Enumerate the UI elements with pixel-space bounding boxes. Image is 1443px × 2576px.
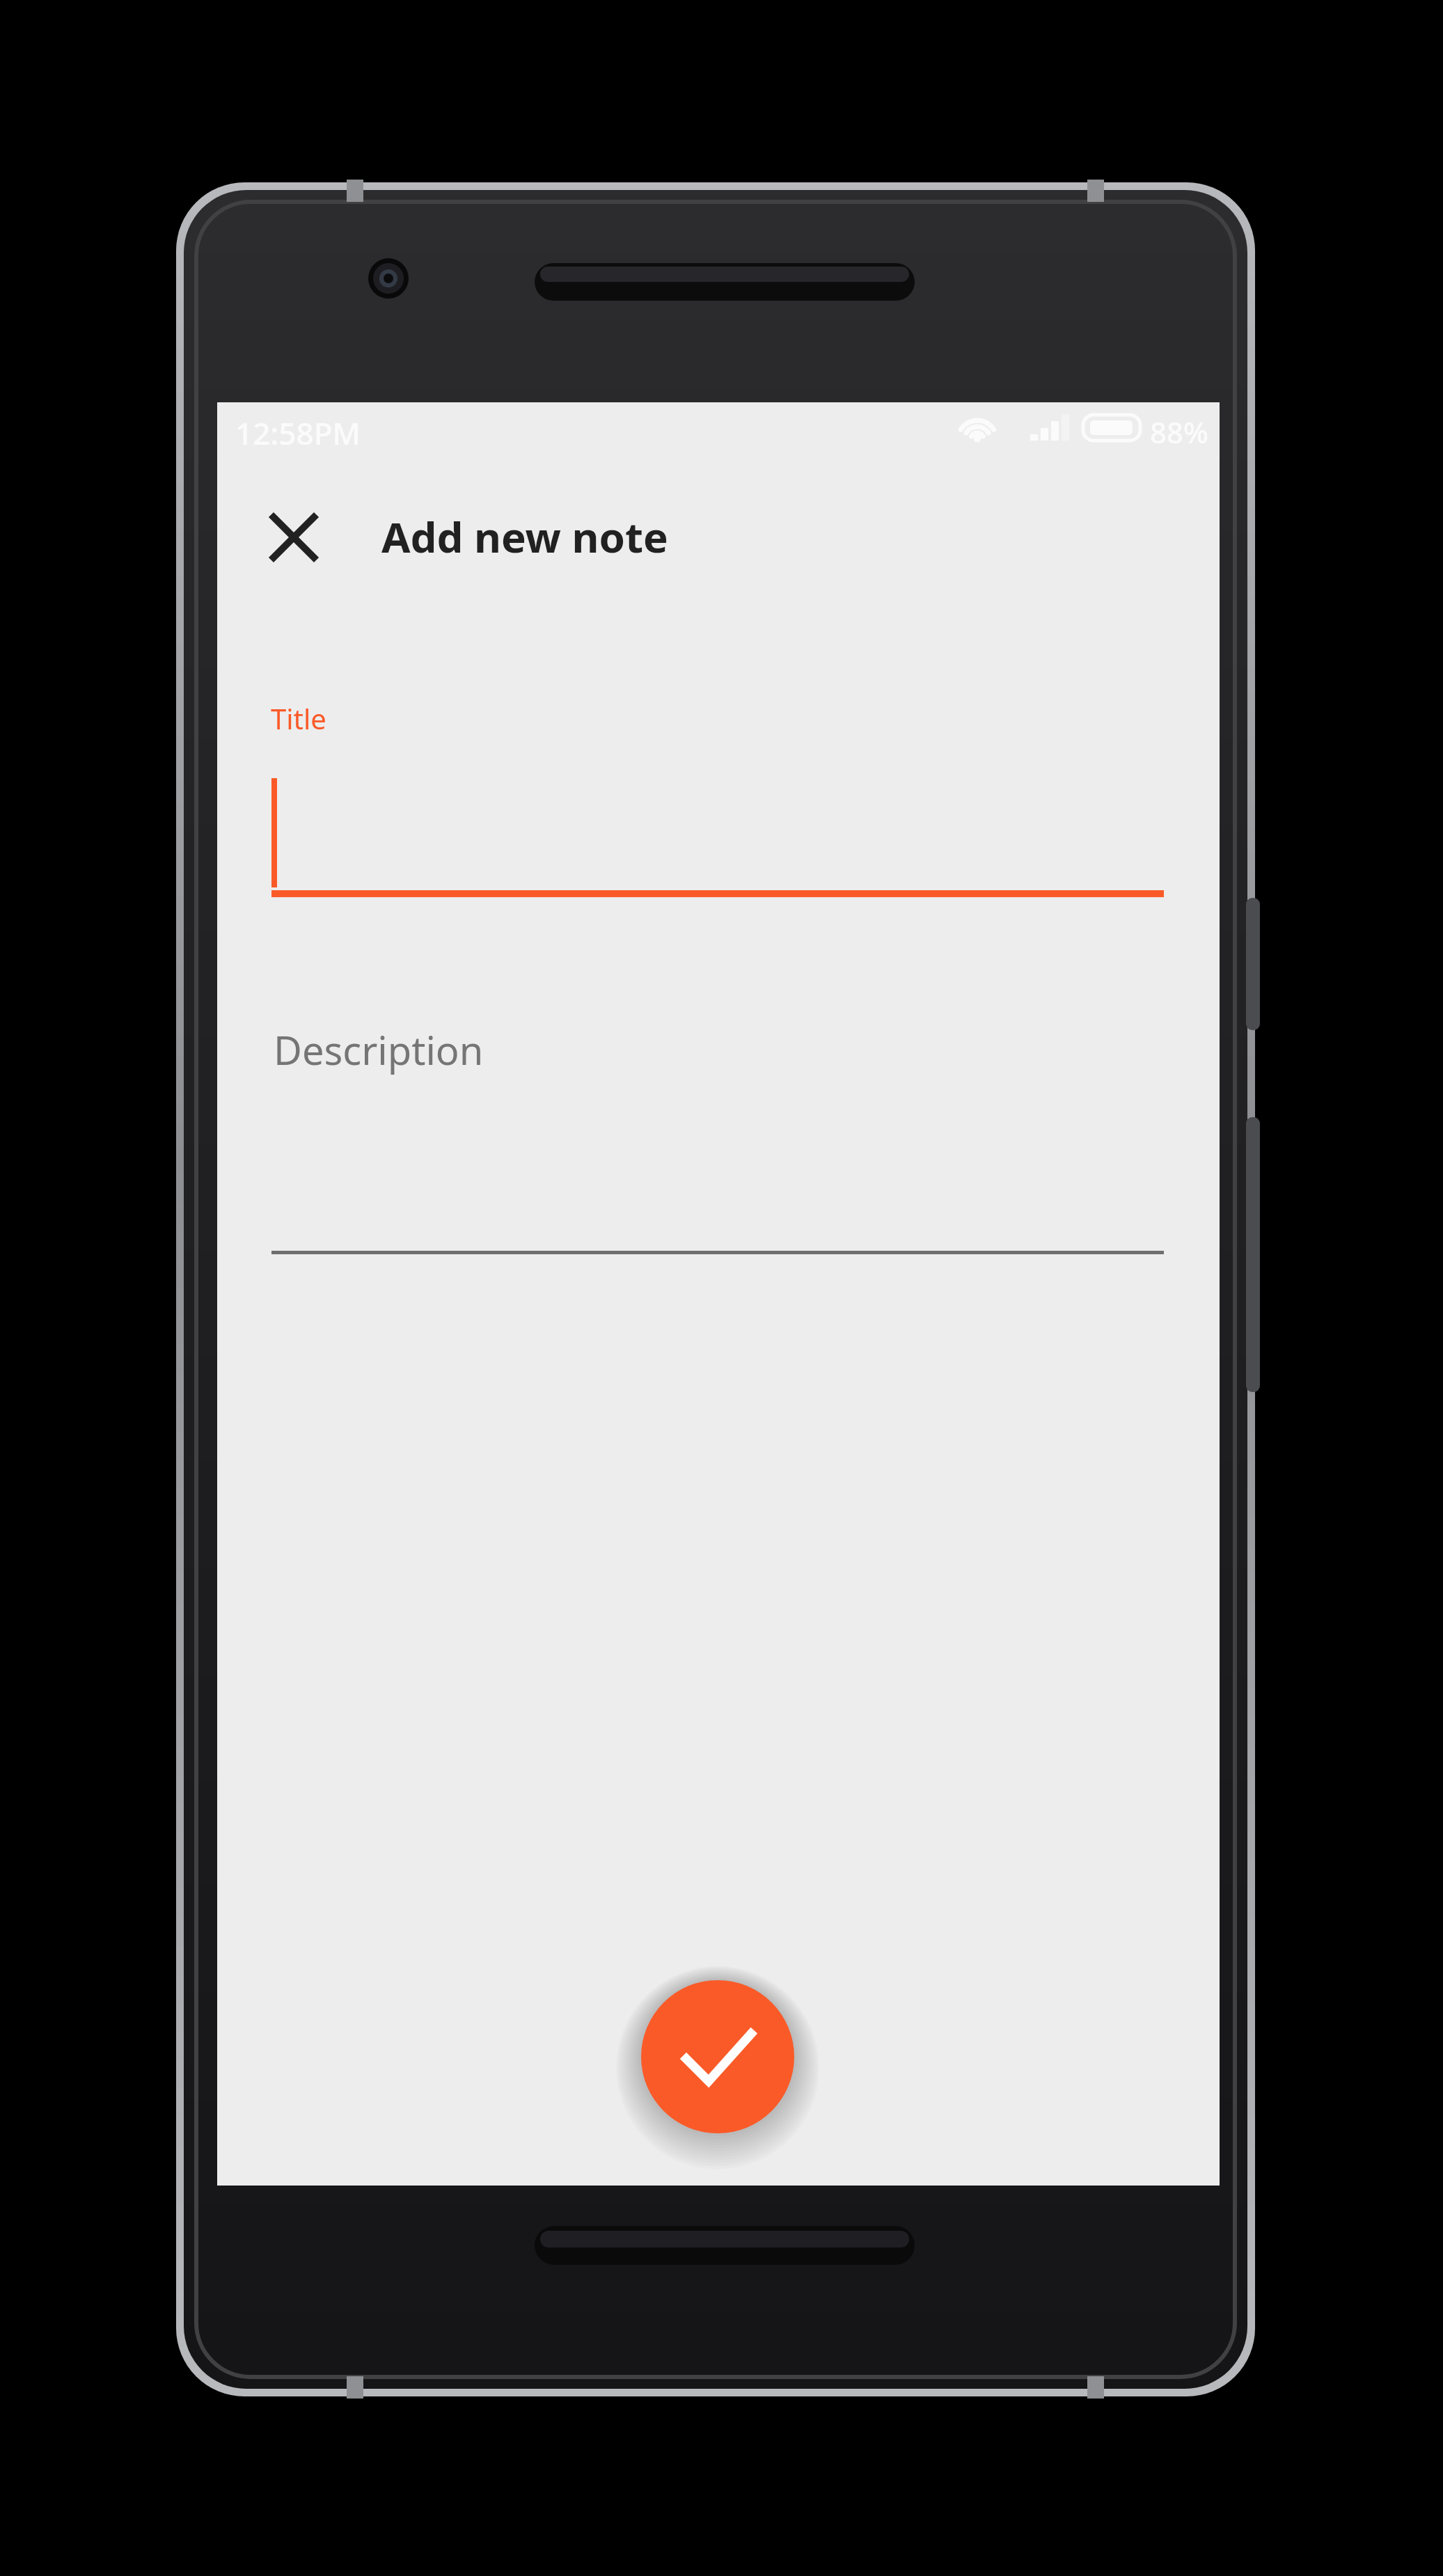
button[interactable]: Save note [641, 1980, 794, 2133]
button[interactable]: Description input field [271, 1002, 1164, 1256]
button[interactable]: Close [251, 494, 338, 582]
button[interactable]: Title input field [271, 689, 1164, 898]
